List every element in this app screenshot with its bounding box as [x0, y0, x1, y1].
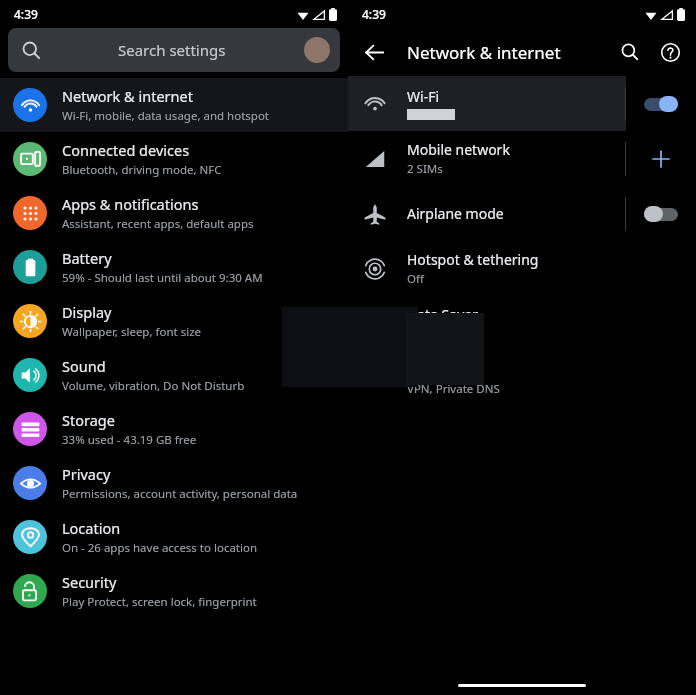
button[interactable]: Add: [626, 131, 696, 186]
button[interactable]: Wi-Fi: [348, 76, 696, 131]
staticText: Data Saver: [407, 305, 478, 324]
staticText: Network & internet: [62, 86, 193, 106]
button[interactable]: Advanced: [348, 351, 696, 406]
staticText: Location: [62, 518, 121, 538]
button[interactable]: [626, 186, 696, 241]
staticText: Connected devices: [62, 140, 190, 160]
staticText: Storage: [62, 410, 115, 430]
staticText: Network & internet: [407, 41, 561, 64]
staticText: Mobile network: [407, 140, 510, 159]
staticText: 4:39: [14, 6, 38, 22]
button[interactable]: Connected devices: [0, 132, 348, 186]
staticText: Hotspot & tethering: [407, 250, 539, 269]
button[interactable]: Storage: [0, 402, 348, 456]
staticText: Off: [407, 271, 424, 287]
staticText: 59% - Should last until about 9:30 AM: [62, 270, 263, 286]
staticText: Play Protect, screen lock, fingerprint: [62, 594, 257, 610]
button[interactable]: Search settings: [8, 28, 340, 72]
button[interactable]: Hotspot & tethering: [348, 241, 696, 296]
staticText: Sound: [62, 356, 106, 376]
staticText: Battery: [62, 248, 112, 268]
staticText: 2 SIMs: [407, 161, 443, 177]
staticText: Wallpaper, sleep, font size: [62, 324, 202, 340]
staticText: Wi-Fi, mobile, data usage, and hotspot: [62, 108, 269, 124]
button[interactable]: Search: [610, 32, 650, 72]
staticText: Privacy: [62, 464, 111, 484]
button[interactable]: Data Saver: [348, 296, 696, 351]
staticText: Security: [62, 572, 117, 592]
staticText: VPN, Private DNS: [407, 381, 500, 397]
staticText: Airplane mode: [407, 204, 504, 223]
staticText: Search settings: [118, 40, 226, 60]
staticText: 33% used - 43.19 GB free: [62, 432, 197, 448]
button[interactable]: Display: [0, 294, 348, 348]
button[interactable]: Privacy: [0, 456, 348, 510]
staticText: Display: [62, 302, 112, 322]
button[interactable]: Security: [0, 564, 348, 618]
button[interactable]: Back: [354, 32, 394, 72]
staticText: Wi-Fi: [407, 87, 440, 106]
staticText: Assistant, recent apps, default apps: [62, 216, 254, 232]
staticText: Apps & notifications: [62, 194, 199, 214]
staticText: Permissions, account activity, personal …: [62, 486, 298, 502]
button[interactable]: Airplane mode: [348, 186, 696, 241]
button[interactable]: Help: [650, 32, 690, 72]
button[interactable]: Mobile network: [348, 131, 696, 186]
staticText: 4:39: [362, 6, 386, 22]
button[interactable]: [626, 76, 696, 131]
staticText: Volume, vibration, Do Not Disturb: [62, 378, 245, 394]
button[interactable]: Apps & notifications: [0, 186, 348, 240]
button[interactable]: Network & internet: [0, 78, 348, 132]
button[interactable]: Location: [0, 510, 348, 564]
other: Add: [651, 149, 671, 169]
button[interactable]: Battery: [0, 240, 348, 294]
staticText: Bluetooth, driving mode, NFC: [62, 162, 222, 178]
button[interactable]: Sound: [0, 348, 348, 402]
staticText: On - 26 apps have access to location: [62, 540, 258, 556]
